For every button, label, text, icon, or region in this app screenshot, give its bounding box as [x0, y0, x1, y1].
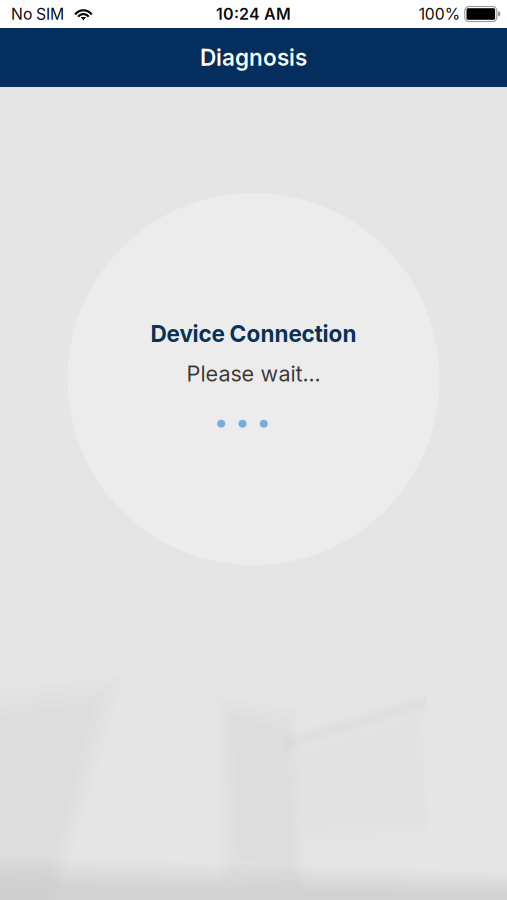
- staticText: 100%: [419, 4, 460, 23]
- staticText: No SIM: [11, 4, 64, 23]
- button[interactable]: Diagnosis: [188, 36, 319, 79]
- staticText: 10:24 AM: [216, 4, 291, 24]
- staticText: Please wait...: [186, 360, 320, 387]
- staticText: Diagnosis: [200, 44, 307, 71]
- staticText: Device Connection: [150, 320, 356, 347]
